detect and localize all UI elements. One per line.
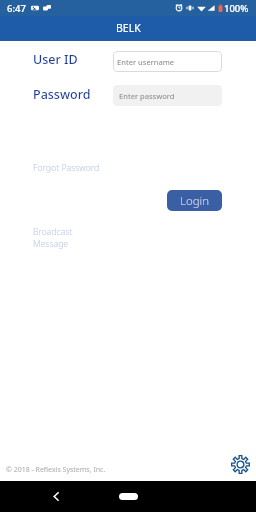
staticText: Broadcast: [33, 226, 73, 238]
staticText: Forgot Password: [33, 162, 100, 174]
staticText: User ID: [33, 51, 78, 68]
button[interactable]: Settings: [231, 455, 250, 474]
staticText: © 2018 - Reflexis Systems, Inc.: [6, 465, 106, 475]
button[interactable]: Broadcast: [33, 226, 73, 250]
button[interactable]: Login: [167, 190, 222, 211]
staticText: Login: [180, 193, 210, 209]
staticText: Enter username: [117, 57, 175, 67]
button[interactable]: Enter password: [113, 85, 222, 106]
button[interactable]: Forgot Password: [33, 162, 100, 174]
staticText: 100%: [224, 2, 249, 15]
button[interactable]: Back: [44, 481, 68, 512]
staticText: Message: [33, 238, 69, 250]
staticText: Enter password: [119, 91, 175, 101]
button[interactable]: Enter username: [113, 51, 222, 72]
staticText: Password: [33, 86, 91, 103]
button[interactable]: Home: [110, 481, 146, 512]
staticText: BELK: [116, 21, 141, 35]
staticText: 6:47: [7, 2, 26, 15]
